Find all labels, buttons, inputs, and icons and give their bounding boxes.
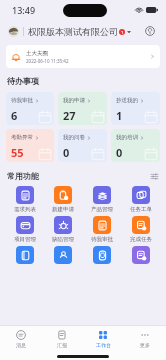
button[interactable]: 汇报 [41, 326, 82, 352]
staticText: 待我审批 [11, 97, 33, 104]
staticText: 待我审批 [91, 236, 113, 243]
button[interactable]: Edit shortcuts [149, 171, 159, 181]
staticText: 待办事项 [7, 76, 39, 86]
staticText: 6 [11, 108, 18, 123]
button[interactable]: Shortcut [44, 246, 82, 264]
button[interactable]: 完成任务 [121, 216, 160, 243]
button[interactable]: Help [142, 23, 158, 39]
button[interactable]: 产品管理 [82, 186, 121, 213]
button[interactable]: 权限版本测试有限公司 [28, 26, 131, 37]
staticText: 项目管理 [14, 236, 36, 243]
staticText: 任务工单 [130, 206, 152, 213]
staticText: 工作台 [96, 342, 111, 348]
button[interactable]: 考勤异常 [6, 129, 54, 162]
staticText: 2022-06-10 11:35:42 [26, 58, 69, 64]
button[interactable]: 抄送我的 [111, 92, 160, 125]
staticText: 需求列表 [14, 206, 36, 213]
button[interactable]: 工作台 [82, 326, 124, 352]
staticText: 常用功能 [7, 171, 39, 181]
staticText: 55 [11, 145, 24, 160]
staticText: 0 [63, 145, 70, 160]
staticText: 13:49 [12, 4, 36, 16]
staticText: 我的申请 [63, 97, 85, 104]
staticText: 我的问卷 [63, 134, 85, 141]
staticText: 考勤异常 [11, 134, 33, 141]
staticText: 土大夫圈 [26, 50, 48, 57]
staticText: 产品管理 [91, 206, 113, 213]
button[interactable]: Shortcut [82, 246, 121, 264]
staticText: 27 [63, 108, 76, 123]
button[interactable]: 土大夫圈 [6, 45, 160, 68]
button[interactable]: Shortcut [121, 246, 160, 264]
staticText: 完成任务 [130, 236, 152, 243]
button[interactable]: 消息 [0, 326, 41, 352]
staticText: 抄送我的 [116, 97, 138, 104]
staticText: 消息 [16, 342, 26, 348]
button[interactable]: 需求列表 [6, 186, 44, 213]
button[interactable]: 项目管理 [6, 216, 44, 243]
button[interactable]: Shortcut [6, 246, 44, 264]
staticText: 1 [121, 30, 124, 35]
staticText: 我的培训 [116, 134, 138, 141]
button[interactable]: 任务工单 [121, 186, 160, 213]
staticText: 权限版本测试有限公司 [28, 26, 118, 37]
button[interactable]: 缺陷管理 [44, 216, 82, 243]
button[interactable]: 我的申请 [58, 92, 107, 125]
button[interactable]: 新建申请 [44, 186, 82, 213]
staticText: 新建申请 [52, 206, 74, 213]
staticText: 1 [116, 108, 123, 123]
staticText: 0 [116, 145, 123, 160]
button[interactable]: 更多 [124, 326, 166, 352]
button[interactable]: 我的培训 [111, 129, 160, 162]
button[interactable]: 我的问卷 [58, 129, 107, 162]
staticText: 汇报 [57, 342, 67, 348]
button[interactable]: 待我审批 [6, 92, 54, 125]
button[interactable]: 待我审批 [82, 216, 121, 243]
staticText: 更多 [140, 342, 150, 348]
staticText: 缺陷管理 [52, 236, 74, 243]
